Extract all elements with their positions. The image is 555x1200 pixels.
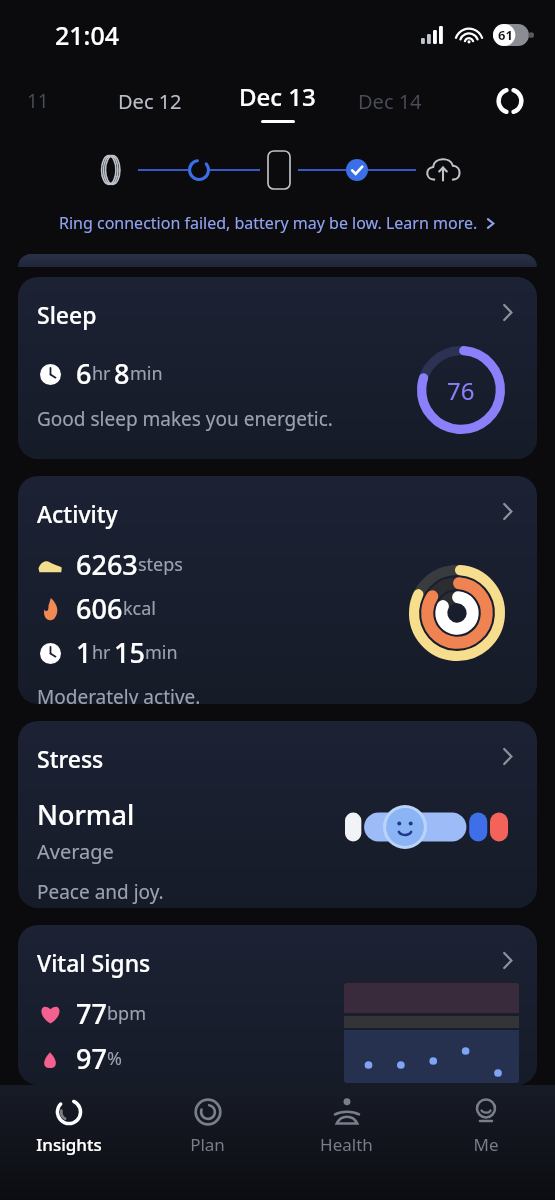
staticText: % — [107, 1046, 122, 1071]
staticText: Dec 13 — [239, 80, 316, 113]
staticText: Stress — [37, 743, 104, 774]
staticText: Activity — [37, 498, 118, 529]
button[interactable]: Insights — [0, 1085, 138, 1200]
staticText: min — [145, 640, 178, 665]
button[interactable]: Plan — [138, 1085, 277, 1200]
button[interactable]: Vital Signs — [18, 925, 537, 1085]
staticText: bpm — [107, 1001, 146, 1026]
button[interactable]: Ring connection failed, battery may be l… — [0, 212, 555, 234]
button[interactable]: Dec 12 — [118, 88, 182, 115]
button[interactable]: Sync — [493, 84, 527, 118]
staticText: Me — [473, 1133, 499, 1156]
staticText: Health — [320, 1133, 373, 1156]
staticText: min — [130, 361, 163, 386]
staticText: Good sleep makes you energetic. — [37, 406, 333, 432]
staticText: 606 — [76, 590, 123, 627]
staticText: Normal — [37, 796, 135, 833]
staticText: 77 — [76, 995, 107, 1032]
staticText: 15 — [114, 634, 145, 671]
staticText: Sleep — [37, 299, 97, 330]
staticText: Insights — [36, 1133, 102, 1156]
staticText: hr — [92, 640, 111, 665]
staticText: Moderately active. — [37, 684, 201, 704]
staticText: 11 — [27, 88, 49, 114]
staticText: Dec 14 — [358, 88, 422, 115]
staticText: Peace and joy. — [37, 879, 164, 905]
staticText: 21:04 — [55, 18, 120, 52]
button[interactable]: Dec 13 — [239, 80, 316, 123]
staticText: 6 — [76, 355, 92, 392]
staticText: 8 — [114, 355, 130, 392]
staticText: steps — [138, 552, 183, 577]
staticText: kcal — [123, 596, 156, 621]
staticText: 61 — [498, 26, 513, 44]
staticText: Ring connection failed, battery may be l… — [59, 212, 478, 234]
button[interactable]: Stress — [18, 721, 537, 908]
staticText: 6263 — [76, 546, 138, 583]
staticText: Vital Signs — [37, 947, 151, 978]
staticText: Dec 12 — [118, 88, 182, 115]
staticText: Average — [37, 838, 114, 865]
staticText: 97 — [76, 1040, 107, 1077]
button[interactable]: Me — [416, 1085, 555, 1200]
button[interactable]: Health — [277, 1085, 416, 1200]
button[interactable]: Activity — [18, 476, 537, 704]
staticText: Plan — [190, 1133, 225, 1156]
staticText: 76 — [447, 374, 475, 407]
staticText: hr — [92, 361, 111, 386]
button[interactable]: Dec 14 — [358, 88, 422, 115]
button[interactable]: Sleep — [18, 277, 537, 459]
staticText: 1 — [76, 634, 92, 671]
